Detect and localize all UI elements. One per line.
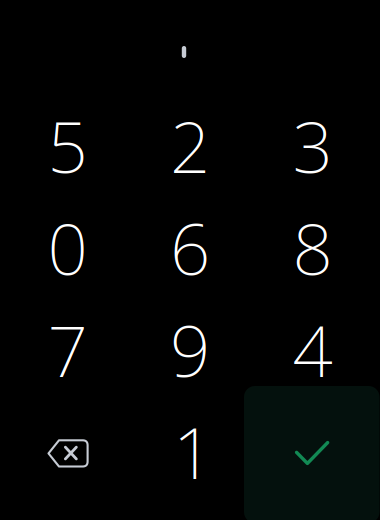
button[interactable]: 3	[253, 96, 371, 194]
staticText: 6	[170, 201, 210, 294]
button[interactable]: 9	[131, 300, 249, 398]
staticText: 0	[47, 201, 87, 294]
button[interactable]: Confirm	[244, 386, 379, 520]
button[interactable]: 6	[131, 198, 249, 296]
staticText: 7	[47, 303, 87, 396]
button[interactable]: 5	[8, 96, 126, 194]
button[interactable]: 7	[8, 300, 126, 398]
button[interactable]: 0	[8, 198, 126, 296]
staticText: 9	[170, 303, 210, 396]
staticText: 3	[292, 99, 332, 192]
staticText: 2	[170, 99, 210, 192]
staticText: 5	[47, 99, 87, 192]
staticText: 4	[292, 303, 332, 396]
button[interactable]: 1	[134, 402, 252, 500]
button[interactable]: 8	[253, 198, 371, 296]
staticText: 1	[173, 405, 213, 498]
button[interactable]: Delete	[8, 402, 126, 500]
staticText: 8	[292, 201, 332, 294]
button[interactable]: 4	[253, 300, 371, 398]
button[interactable]: 2	[131, 96, 249, 194]
